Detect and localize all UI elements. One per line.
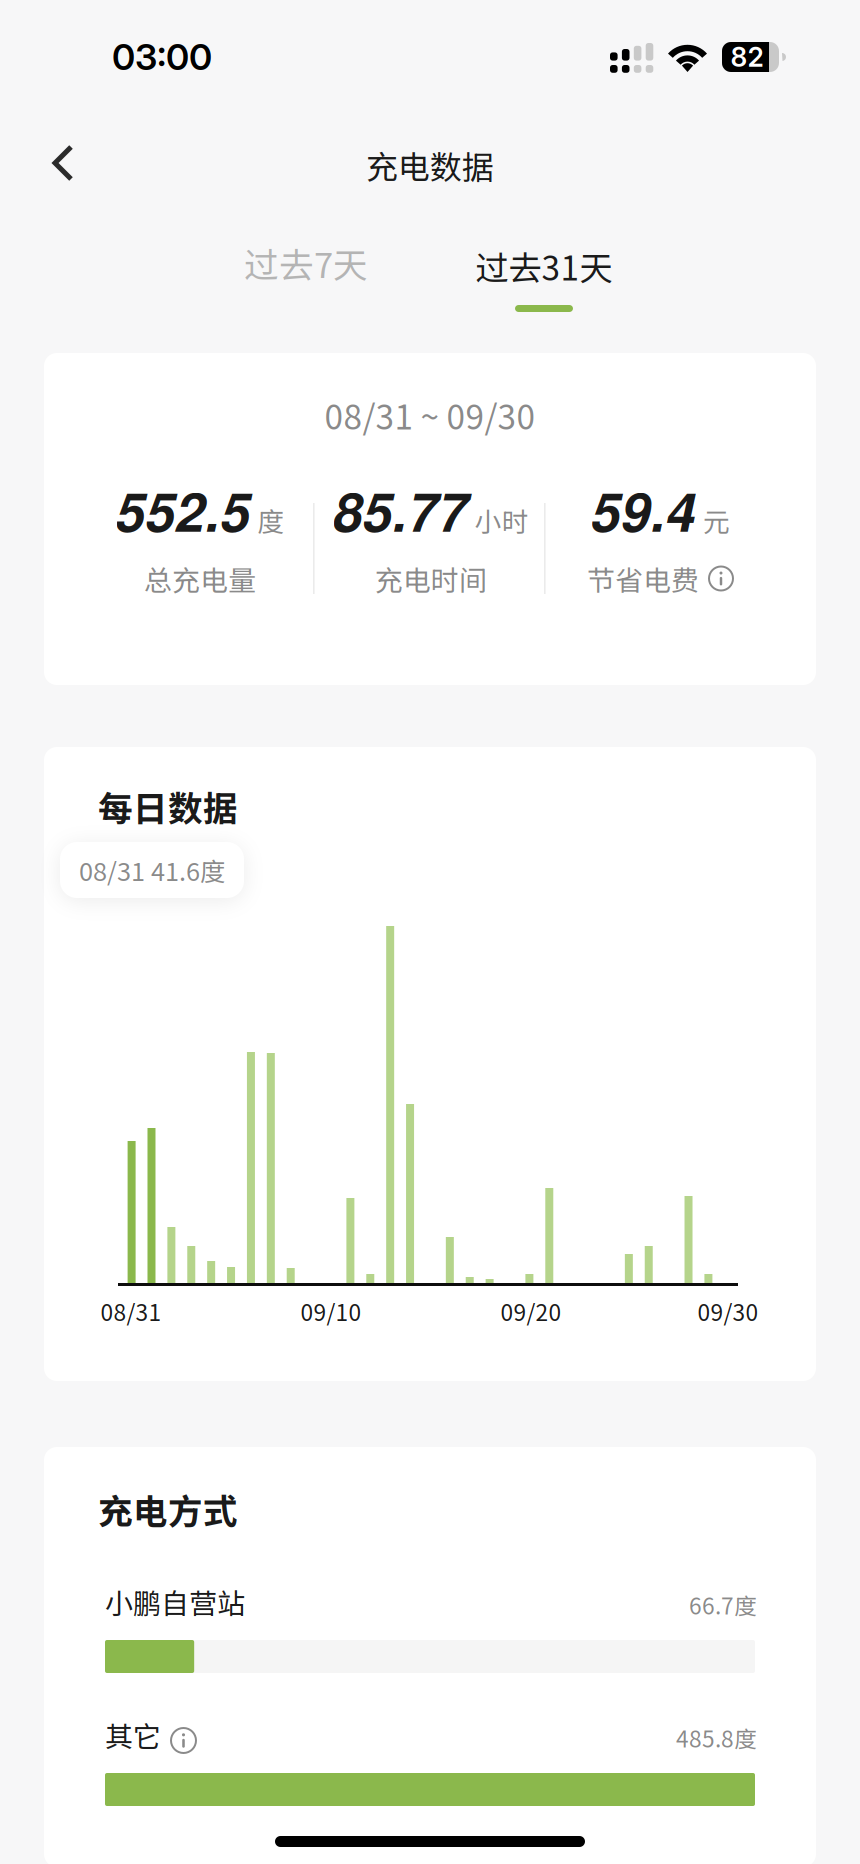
staticText: 03:00 (112, 35, 212, 79)
staticText: 82 (730, 41, 763, 73)
staticText: 小时 (475, 501, 529, 539)
button[interactable]: 关于其它充电方式 (170, 1728, 197, 1755)
staticText: 08/31 (100, 1295, 161, 1327)
staticText: 充电数据 (366, 142, 494, 188)
staticText: 59.4 (591, 472, 696, 548)
staticText: 08/31 41.6度 (79, 852, 225, 888)
staticText: 过去31天 (475, 242, 612, 290)
staticText: 其它 (105, 1714, 161, 1755)
staticText: 09/30 (697, 1295, 758, 1327)
staticText: 85.77 (333, 472, 468, 548)
staticText: 09/20 (500, 1295, 561, 1327)
staticText: 09/10 (300, 1295, 361, 1327)
button[interactable]: Back (30, 130, 96, 196)
staticText: 每日数据 (98, 781, 238, 831)
button[interactable]: 过去31天 (424, 243, 664, 319)
staticText: 充电时间 (375, 558, 487, 599)
staticText: 485.8度 (676, 1721, 757, 1754)
staticText: 66.7度 (689, 1588, 757, 1621)
staticText: 节省电费 (587, 558, 699, 599)
staticText: 元 (703, 501, 730, 539)
staticText: 过去7天 (244, 238, 368, 288)
staticText: 总充电量 (144, 558, 256, 599)
staticText: 小鹏自营站 (105, 1581, 245, 1622)
staticText: 度 (257, 501, 284, 539)
button[interactable]: 关于节省电费 (708, 565, 734, 591)
staticText: 552.5 (115, 472, 250, 548)
staticText: 08/31 ~ 09/30 (324, 391, 535, 439)
staticText: 充电方式 (98, 1484, 238, 1534)
button[interactable]: 过去7天 (186, 240, 426, 316)
